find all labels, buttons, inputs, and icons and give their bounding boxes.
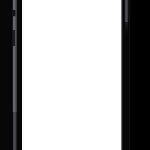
button[interactable]: Phone device mockup: [0, 0, 150, 150]
